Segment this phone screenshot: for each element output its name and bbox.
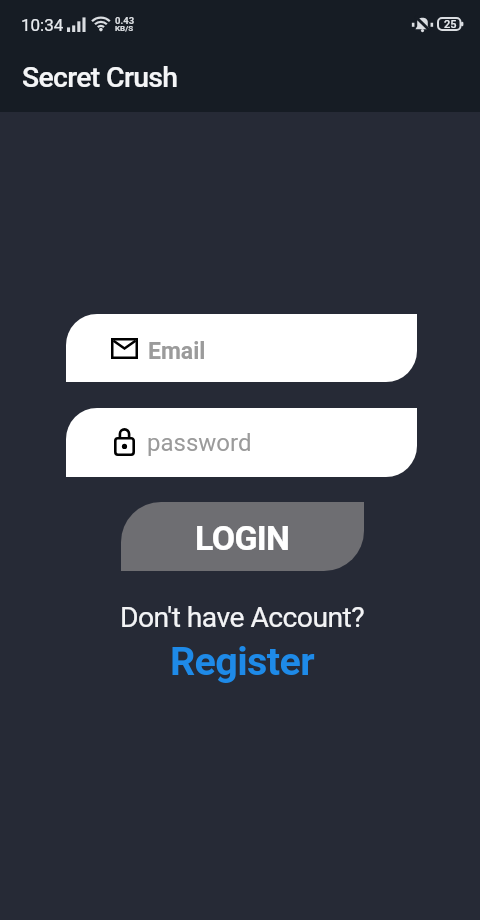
staticText: 10:34 bbox=[21, 15, 64, 35]
staticText: KB/S bbox=[115, 24, 134, 33]
button[interactable]: Register bbox=[164, 638, 321, 684]
staticText: LOGIN bbox=[195, 519, 290, 559]
staticText: password bbox=[147, 429, 252, 457]
staticText: Secret Crush bbox=[22, 61, 178, 94]
button[interactable]: Email bbox=[66, 314, 417, 382]
staticText: Register bbox=[170, 638, 315, 684]
staticText: Don't have Account? bbox=[120, 601, 365, 634]
staticText: 25 bbox=[444, 18, 457, 31]
button[interactable]: password bbox=[66, 408, 417, 477]
staticText: Email bbox=[148, 338, 206, 365]
other: Silent mode bbox=[412, 16, 433, 31]
button[interactable]: LOGIN bbox=[121, 502, 364, 571]
staticText: 0.43 bbox=[115, 15, 135, 26]
